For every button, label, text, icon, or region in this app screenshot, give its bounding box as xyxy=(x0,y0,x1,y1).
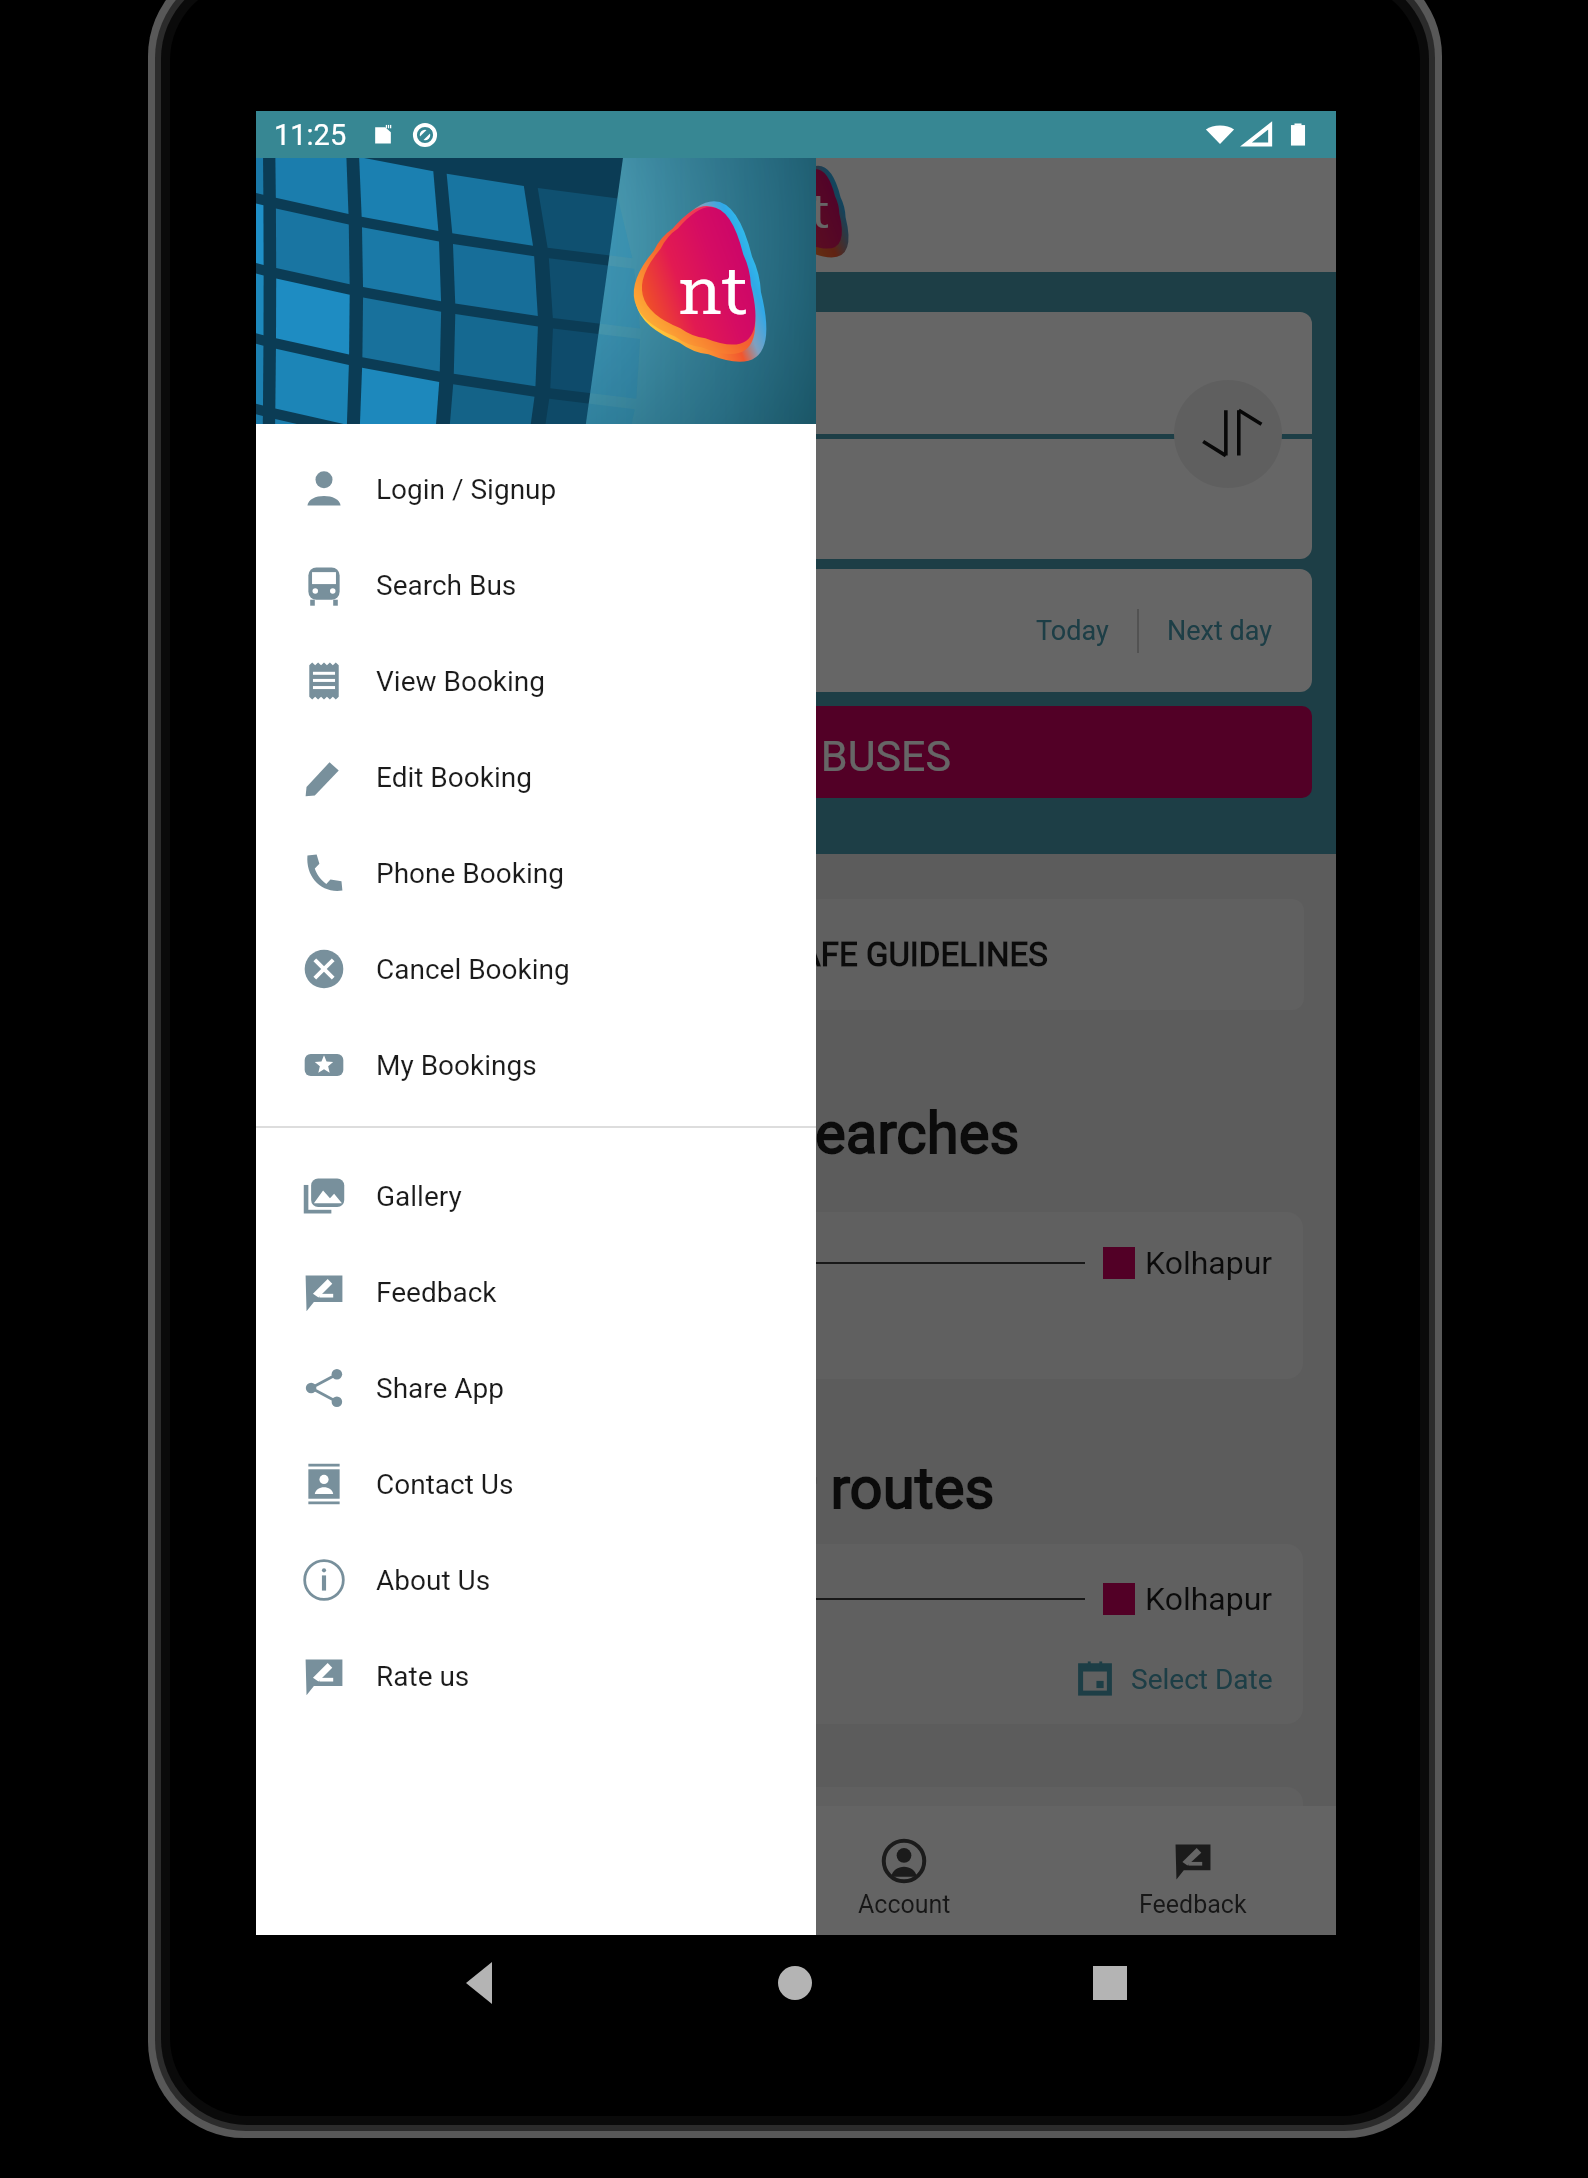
button[interactable]: COVID SAFE GUIDELINES xyxy=(280,899,1304,1010)
button[interactable]: Phone Booking xyxy=(256,825,816,921)
button[interactable]: Pune xyxy=(280,1544,1303,1724)
staticText: Cancel Booking xyxy=(376,953,570,986)
button[interactable]: Search Bus xyxy=(256,537,816,633)
staticText: Account xyxy=(858,1890,951,1919)
button[interactable]: My Bookings xyxy=(256,1017,816,1113)
staticText: Contact Us xyxy=(376,1468,514,1501)
staticText: Phone Booking xyxy=(376,857,564,890)
staticText: Rate us xyxy=(376,1660,470,1693)
staticText: nt xyxy=(678,251,748,331)
button[interactable]: Feedback xyxy=(1049,1806,1336,1935)
button[interactable]: Next day xyxy=(1161,615,1278,647)
button[interactable]: Pune xyxy=(280,1212,1303,1379)
staticText: Pune xyxy=(356,1580,429,1618)
staticText: Search Bus xyxy=(376,569,517,602)
other: System navigation bar xyxy=(0,0,1588,2178)
staticText: Next day xyxy=(1167,615,1272,647)
staticText: Gallery xyxy=(376,1180,462,1213)
button[interactable]: Edit Booking xyxy=(256,729,816,825)
button[interactable]: Cancel Booking xyxy=(256,921,816,1017)
staticText: Popular routes xyxy=(617,1454,995,1522)
staticText: Select Date xyxy=(1131,1663,1273,1696)
staticText: SEARCH BUSES xyxy=(647,731,952,781)
button[interactable]: View Booking xyxy=(256,633,816,729)
button[interactable]: Today xyxy=(1030,615,1115,647)
button[interactable]: Swap source and destination xyxy=(1174,380,1282,488)
button[interactable]: Rate us xyxy=(256,1628,816,1724)
staticText: Today xyxy=(1036,615,1109,647)
staticText: Kolhapur xyxy=(1145,1823,1273,1861)
staticText: Edit Booking xyxy=(376,761,532,794)
button[interactable]: SEARCH BUSES xyxy=(280,706,1312,798)
staticText: About Us xyxy=(376,1564,491,1597)
button[interactable]: Share App xyxy=(256,1340,816,1436)
staticText: COVID SAFE GUIDELINES xyxy=(676,935,1048,974)
button[interactable]: Account xyxy=(760,1806,1048,1935)
staticText: Login / Signup xyxy=(376,473,557,506)
staticText: Kolhapur xyxy=(1145,1580,1273,1618)
button[interactable]: Feedback xyxy=(256,1244,816,1340)
button[interactable]: Pune xyxy=(280,1787,1303,1935)
staticText: Feedback xyxy=(1139,1890,1247,1919)
staticText: Select Date xyxy=(1131,1906,1273,1935)
staticText: View Booking xyxy=(376,665,546,698)
staticText: nt xyxy=(780,184,829,240)
staticText: Share App xyxy=(376,1372,505,1405)
button[interactable]: Login / Signup xyxy=(256,441,816,537)
button[interactable]: Gallery xyxy=(256,1148,816,1244)
button[interactable]: Contact Us xyxy=(256,1436,816,1532)
staticText: Kolhapur xyxy=(1145,1244,1273,1282)
staticText: My Bookings xyxy=(376,1049,537,1082)
button[interactable]: About Us xyxy=(256,1532,816,1628)
staticText: Feedback xyxy=(376,1276,497,1309)
staticText: 11:25 xyxy=(274,118,347,152)
staticText: Recent searches xyxy=(592,1099,1020,1167)
